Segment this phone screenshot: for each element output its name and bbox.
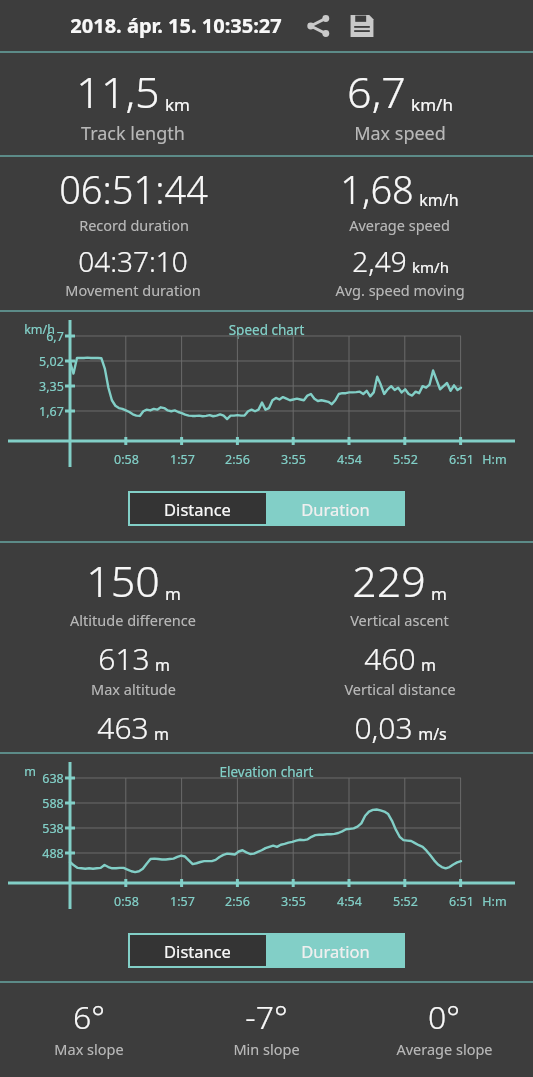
staticText: 0:58 bbox=[114, 893, 139, 910]
staticText: m bbox=[421, 654, 436, 676]
button[interactable]: Duration bbox=[266, 491, 405, 526]
staticText: 6,7 bbox=[46, 328, 64, 345]
staticText: Average speed bbox=[349, 215, 450, 235]
staticText: Vertical distance bbox=[344, 679, 456, 699]
staticText: Average slope bbox=[396, 1039, 493, 1059]
staticText: Max altitude bbox=[91, 679, 176, 699]
staticText: Vertical ascent bbox=[350, 610, 449, 630]
staticText: Duration bbox=[301, 498, 370, 520]
staticText: 6:51 bbox=[449, 893, 474, 910]
staticText: 0° bbox=[428, 995, 460, 1039]
staticText: 3:55 bbox=[281, 451, 306, 468]
staticText: 460 bbox=[364, 638, 416, 679]
staticText: -7° bbox=[245, 995, 288, 1039]
staticText: 150 bbox=[86, 551, 160, 610]
staticText: 6:51 bbox=[449, 451, 474, 468]
staticText: km/h bbox=[419, 189, 459, 211]
staticText: 2:56 bbox=[225, 451, 250, 468]
staticText: km/h bbox=[24, 321, 55, 338]
staticText: H:m bbox=[482, 451, 507, 468]
staticText: 4:54 bbox=[337, 451, 362, 468]
staticText: Distance bbox=[164, 498, 231, 520]
staticText: 04:37:10 bbox=[78, 242, 188, 280]
staticText: 5:52 bbox=[393, 451, 418, 468]
staticText: 1:57 bbox=[170, 451, 195, 468]
staticText: Track length bbox=[81, 121, 185, 146]
staticText: 6° bbox=[73, 995, 105, 1039]
staticText: m bbox=[165, 582, 181, 605]
staticText: 11,5 bbox=[76, 62, 160, 121]
button[interactable]: Save bbox=[342, 6, 382, 46]
staticText: Record duration bbox=[79, 215, 189, 235]
staticText: Altitude difference bbox=[70, 610, 196, 630]
staticText: Elevation chart bbox=[0, 763, 533, 781]
staticText: m bbox=[24, 763, 36, 780]
staticText: 488 bbox=[42, 845, 64, 862]
staticText: 5:52 bbox=[393, 893, 418, 910]
staticText: 638 bbox=[42, 770, 64, 787]
button[interactable]: Share bbox=[298, 6, 338, 46]
staticText: km/h bbox=[411, 93, 453, 116]
staticText: H:m bbox=[482, 893, 507, 910]
button[interactable]: Distance bbox=[128, 933, 266, 968]
staticText: Duration bbox=[301, 940, 370, 962]
staticText: 06:51:44 bbox=[59, 163, 208, 215]
staticText: 2:56 bbox=[225, 893, 250, 910]
staticText: Min slope bbox=[233, 1039, 300, 1059]
staticText: 463 bbox=[97, 707, 149, 748]
staticText: Max speed bbox=[354, 121, 446, 146]
staticText: Max slope bbox=[54, 1039, 124, 1059]
staticText: m bbox=[431, 582, 447, 605]
staticText: 3:55 bbox=[281, 893, 306, 910]
staticText: Movement duration bbox=[65, 280, 201, 300]
staticText: m/s bbox=[418, 723, 447, 745]
staticText: km/h bbox=[412, 257, 449, 277]
staticText: 538 bbox=[42, 820, 64, 837]
staticText: 0,03 bbox=[354, 707, 413, 748]
staticText: 229 bbox=[352, 551, 426, 610]
staticText: 6,7 bbox=[347, 62, 406, 121]
staticText: m bbox=[154, 723, 169, 745]
staticText: Distance bbox=[164, 940, 231, 962]
staticText: Speed chart bbox=[0, 321, 533, 339]
staticText: 613 bbox=[98, 638, 150, 679]
staticText: km bbox=[165, 93, 190, 116]
staticText: 1:57 bbox=[170, 893, 195, 910]
staticText: 4:54 bbox=[337, 893, 362, 910]
staticText: 588 bbox=[42, 795, 64, 812]
staticText: 5,02 bbox=[39, 353, 64, 370]
staticText: 1,68 bbox=[340, 163, 414, 215]
button[interactable]: Duration bbox=[266, 933, 405, 968]
staticText: 2,49 bbox=[352, 242, 407, 280]
staticText: m bbox=[155, 654, 170, 676]
staticText: 0:58 bbox=[114, 451, 139, 468]
staticText: Avg. speed moving bbox=[335, 280, 465, 300]
button[interactable]: Distance bbox=[128, 491, 266, 526]
staticText: 1,67 bbox=[39, 403, 64, 420]
staticText: 2018. ápr. 15. 10:35:27 bbox=[70, 12, 282, 39]
staticText: 3,35 bbox=[39, 378, 64, 395]
